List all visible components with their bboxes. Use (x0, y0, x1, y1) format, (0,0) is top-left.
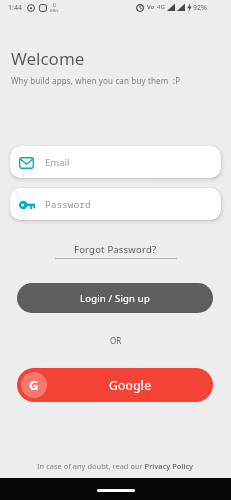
button[interactable]: In case of any doubt, read our Privacy P… (37, 461, 194, 471)
staticText: G (29, 376, 39, 394)
button[interactable]: Password (10, 188, 221, 220)
staticText: Vo (147, 3, 155, 11)
staticText: Why build apps, when you can buy them :P (11, 75, 181, 86)
staticText: Email (45, 156, 70, 169)
button[interactable]: Login / Sign up (17, 283, 213, 313)
staticText: Login / Sign up (80, 292, 150, 305)
button[interactable]: Email (10, 146, 221, 178)
staticText: Password (45, 198, 91, 211)
staticText: 1:44 (8, 3, 22, 13)
staticText: Google (109, 377, 152, 393)
staticText: 92% (193, 3, 207, 13)
staticText: 4G (157, 3, 165, 11)
staticText: Welcome (11, 47, 85, 70)
button[interactable]: Forgot Password? (74, 243, 157, 256)
button[interactable]: G (17, 368, 213, 402)
staticText: KB/s (50, 8, 59, 13)
staticText: OR (110, 335, 122, 346)
staticText: 0 (53, 2, 56, 9)
